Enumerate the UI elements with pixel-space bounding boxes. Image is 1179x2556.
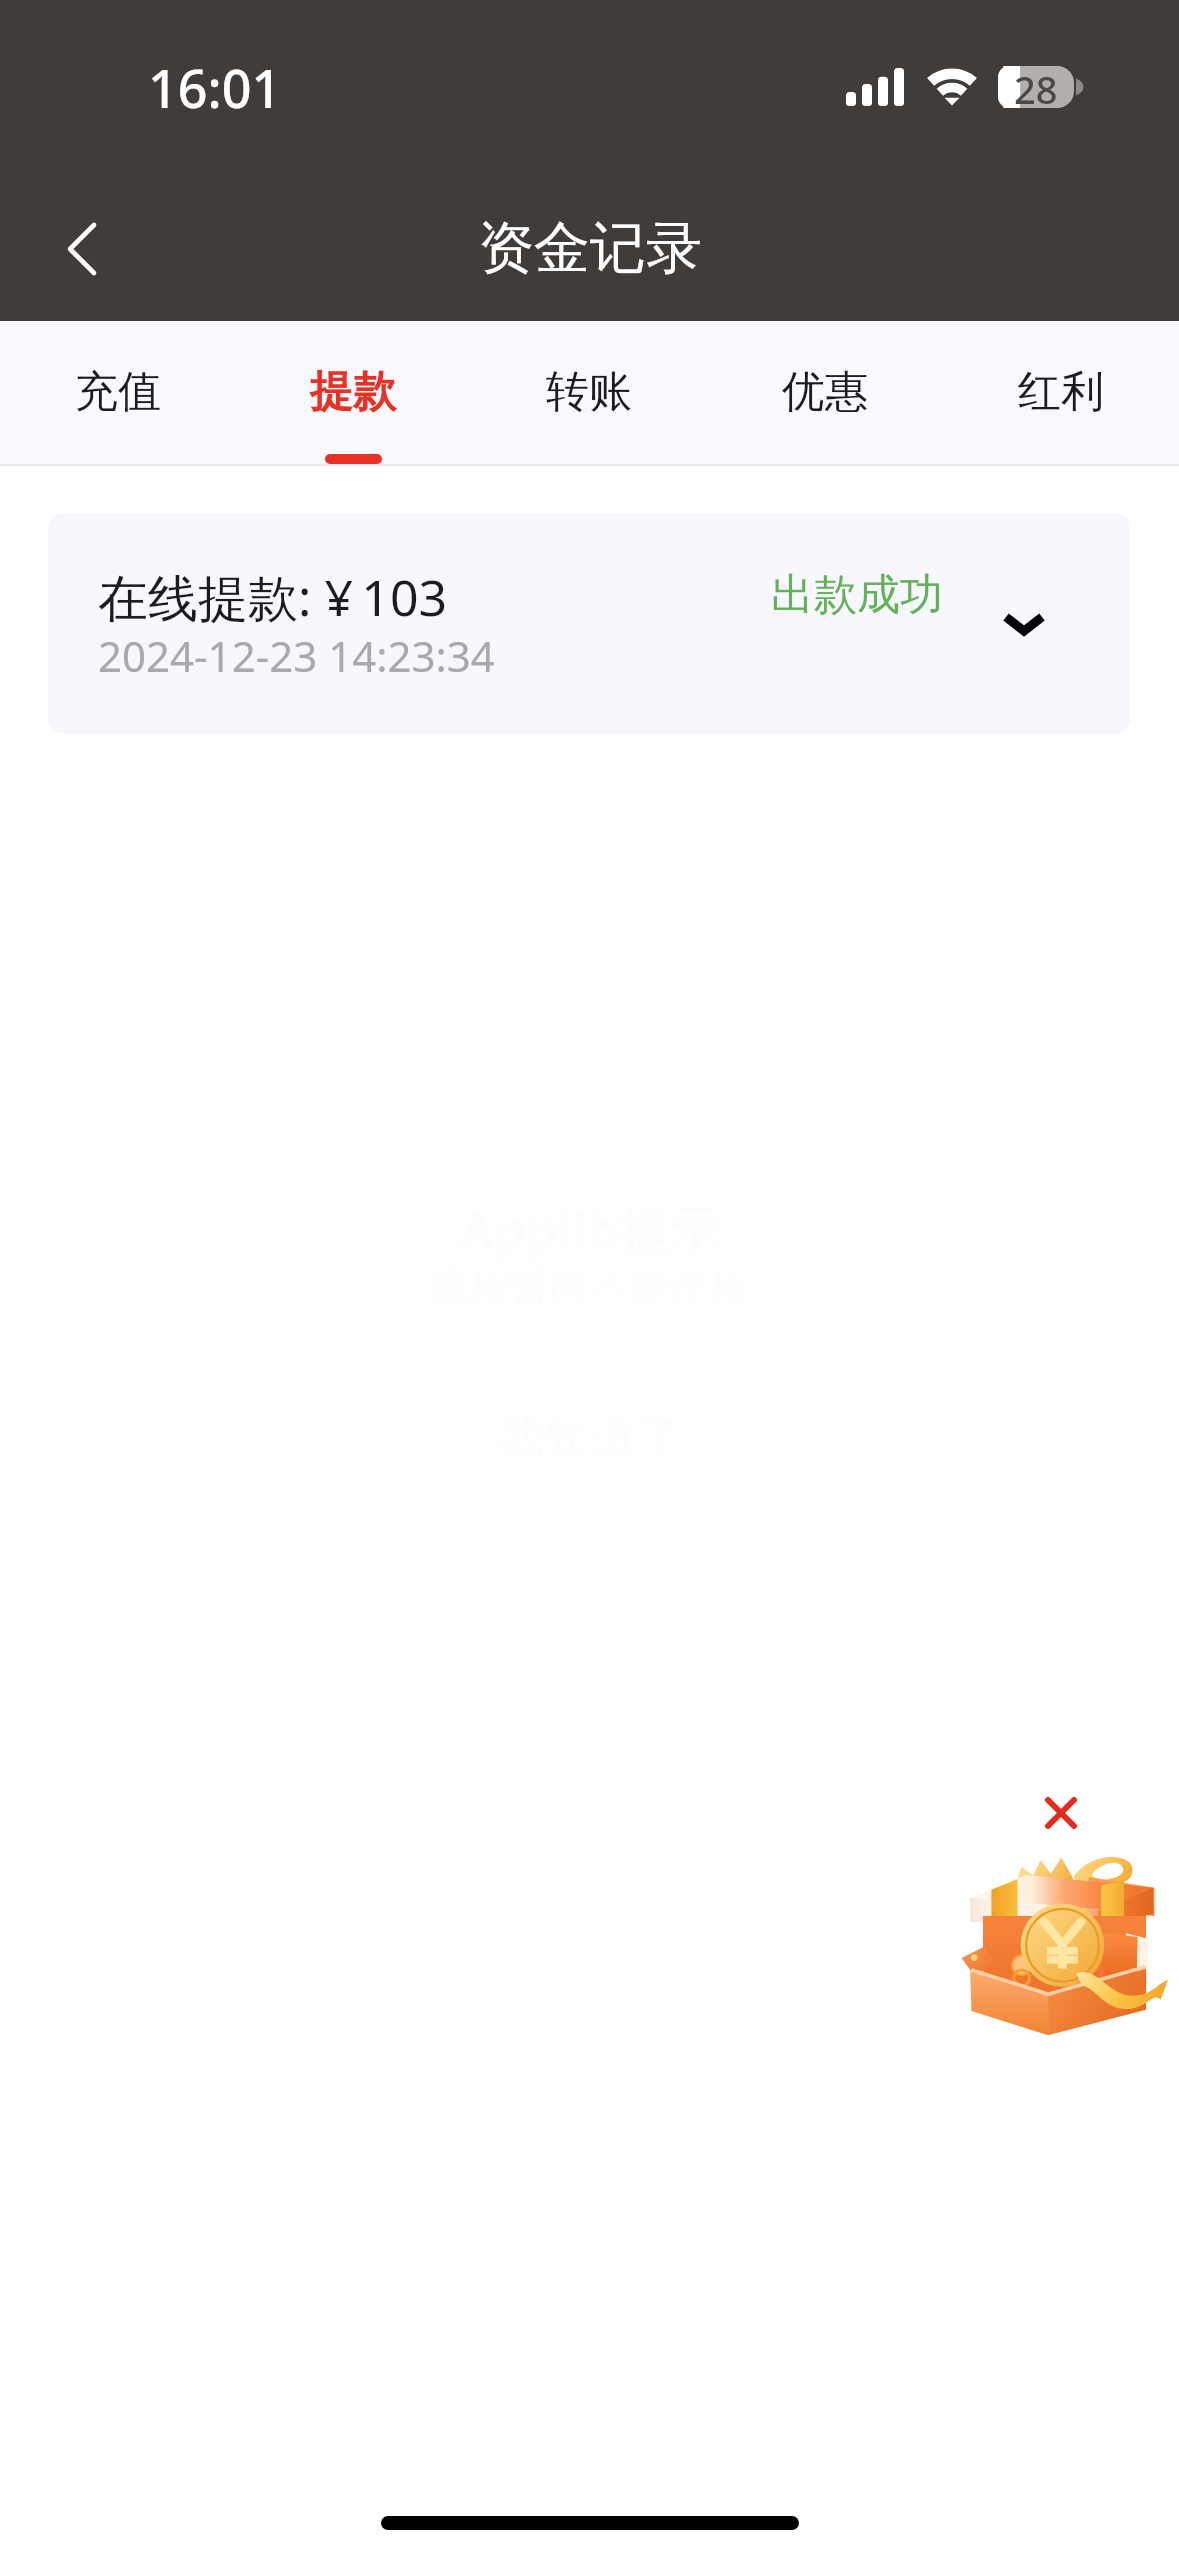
button[interactable]: Close promotion — [1046, 1798, 1076, 1828]
button[interactable]: Back — [27, 194, 137, 304]
staticText: 16:01 — [148, 52, 282, 123]
button[interactable]: 优惠 — [707, 321, 943, 464]
staticText: 充值 — [75, 365, 161, 419]
button[interactable]: 充值 — [0, 321, 235, 464]
staticText: 提款 — [310, 365, 396, 419]
staticText: 2024-12-23 14:23:34 — [98, 627, 495, 684]
button[interactable]: 转账 — [471, 321, 707, 464]
button[interactable]: 在线提款: ¥ 103 — [48, 513, 1131, 734]
staticText: 28 — [1014, 63, 1058, 105]
staticText: 红利 — [1018, 365, 1104, 419]
staticText: 转账 — [546, 365, 632, 419]
staticText: 在线提款: ¥ 103 — [98, 563, 448, 631]
button[interactable]: Expand — [984, 589, 1064, 659]
staticText: 优惠 — [782, 365, 868, 419]
button[interactable]: 提款 — [235, 321, 471, 464]
button[interactable]: Promotion gift — [959, 1856, 1168, 2038]
button[interactable]: 红利 — [943, 321, 1179, 464]
staticText: 资金记录 — [478, 213, 702, 284]
staticText: 出款成功 — [771, 568, 943, 622]
